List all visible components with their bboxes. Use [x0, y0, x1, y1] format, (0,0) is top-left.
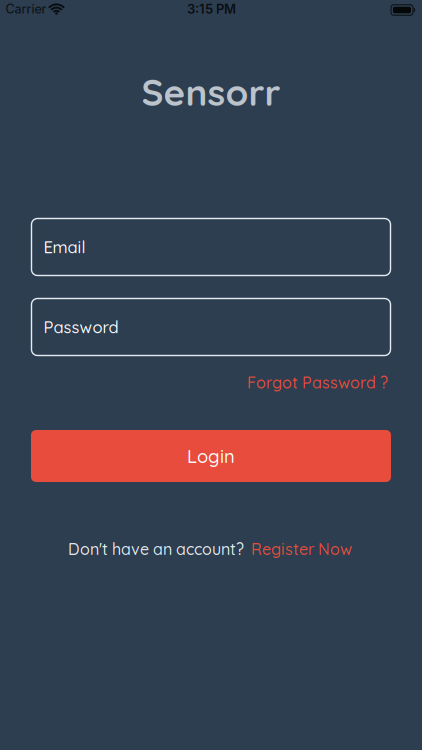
- staticText: Don't have an account?: [68, 539, 244, 559]
- staticText: Forgot Password ?: [247, 372, 388, 392]
- button[interactable]: Email: [31, 218, 390, 275]
- button[interactable]: Forgot Password ?: [247, 372, 388, 392]
- staticText: Carrier: [5, 1, 46, 17]
- staticText: Login: [187, 444, 235, 467]
- button[interactable]: Login: [31, 430, 391, 482]
- staticText: 3:15 PM: [187, 1, 236, 17]
- staticText: Register Now: [251, 539, 352, 559]
- staticText: Sensorr: [141, 69, 280, 115]
- staticText: Email: [43, 237, 85, 257]
- button[interactable]: Password: [31, 298, 390, 355]
- staticText: Password: [43, 317, 118, 337]
- button[interactable]: Register Now: [251, 539, 352, 559]
